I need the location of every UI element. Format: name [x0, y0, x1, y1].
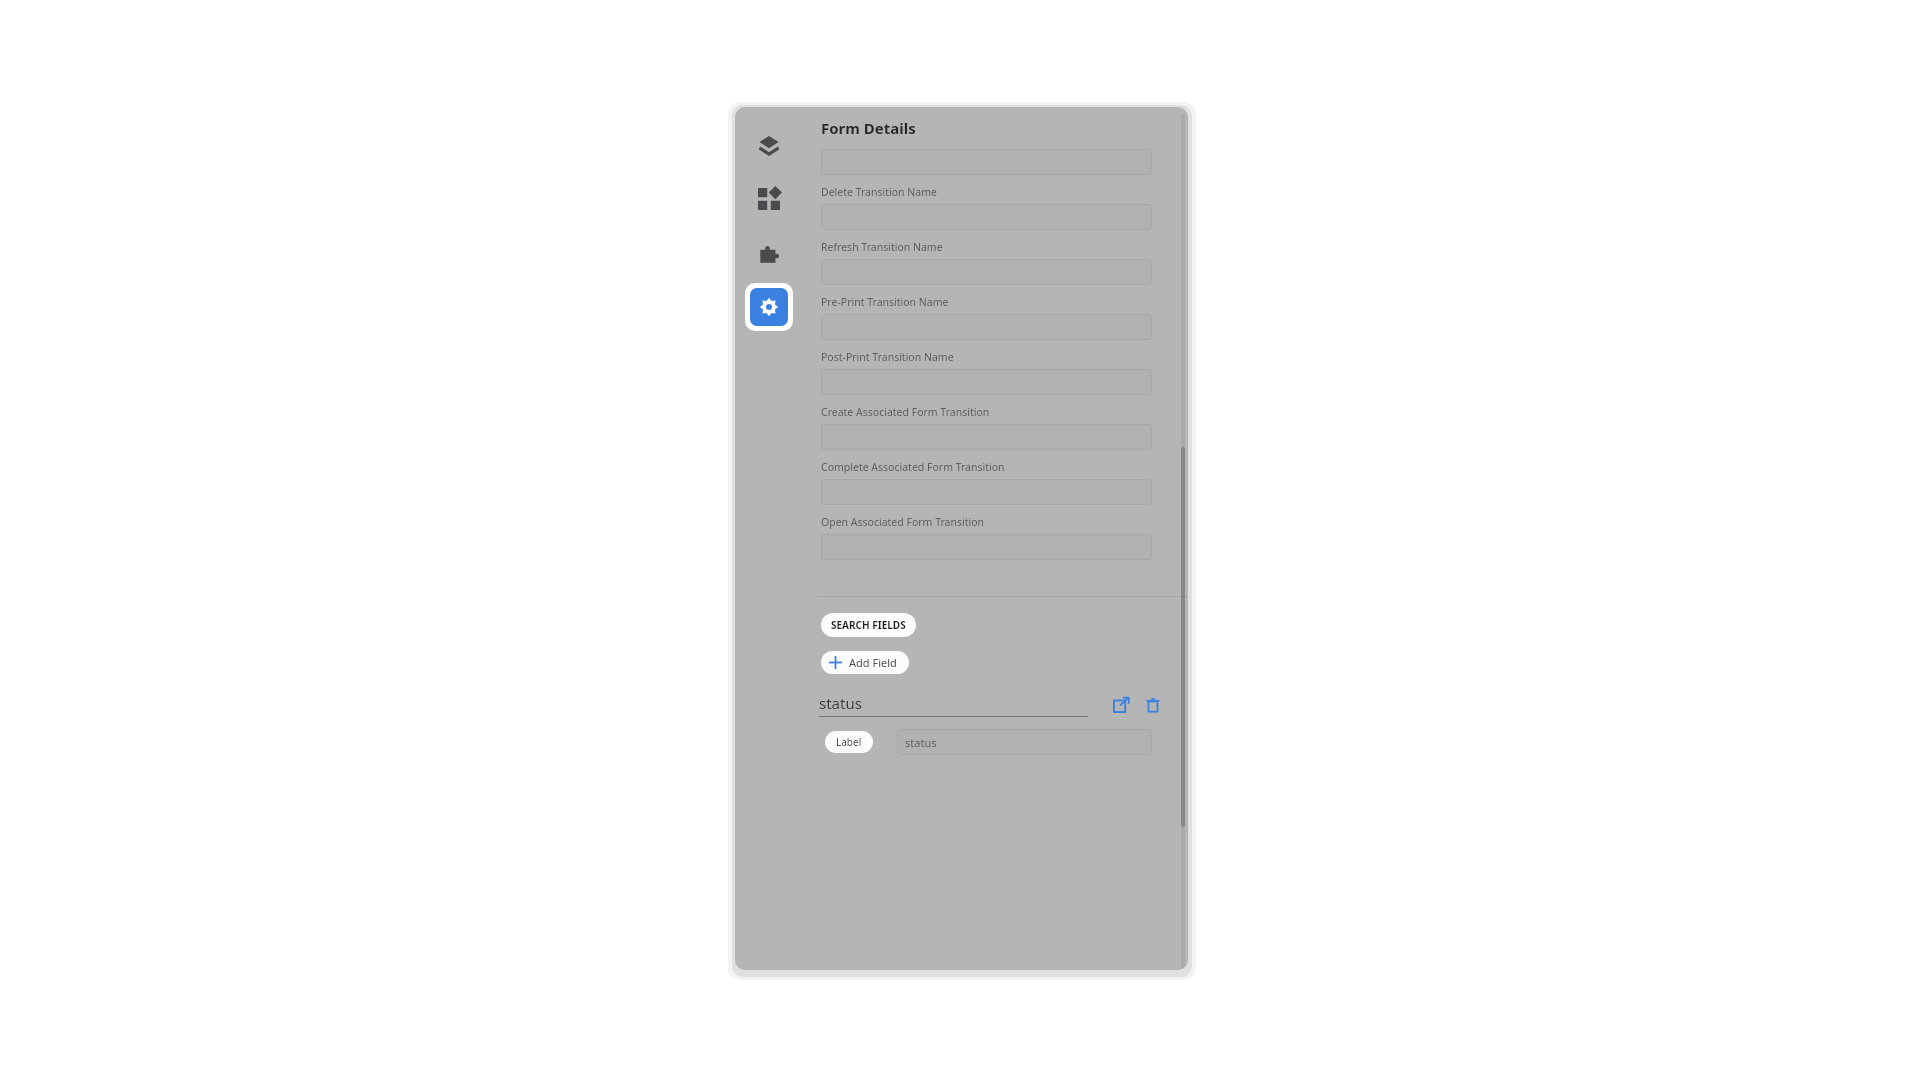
staticText: status	[905, 735, 937, 750]
staticText: Refresh Transition Name	[821, 240, 943, 254]
button[interactable]: Add Field	[821, 651, 909, 674]
staticText: Form Details	[821, 118, 916, 138]
button[interactable]: Extensions	[751, 235, 787, 271]
staticText: Create Associated Form Transition	[821, 405, 990, 419]
button[interactable]: Settings	[745, 283, 793, 331]
button[interactable]: status	[897, 729, 1152, 755]
staticText: Pre-Print Transition Name	[821, 295, 949, 309]
staticText: status	[819, 693, 862, 713]
staticText: Add Field	[849, 655, 897, 670]
button[interactable]: Layers	[751, 127, 787, 163]
button[interactable]: Delete	[1140, 692, 1166, 718]
staticText: Open Associated Form Transition	[821, 515, 985, 529]
staticText: Label	[836, 735, 862, 749]
button[interactable]: Label	[825, 731, 873, 753]
button[interactable]: Widgets	[751, 181, 787, 217]
staticText: Delete Transition Name	[821, 185, 937, 199]
staticText: Complete Associated Form Transition	[821, 460, 1005, 474]
button[interactable]: Open	[1108, 692, 1134, 718]
staticText: Post-Print Transition Name	[821, 350, 954, 364]
staticText: SEARCH FIELDS	[831, 618, 906, 632]
button[interactable]: SEARCH FIELDS	[821, 613, 916, 637]
